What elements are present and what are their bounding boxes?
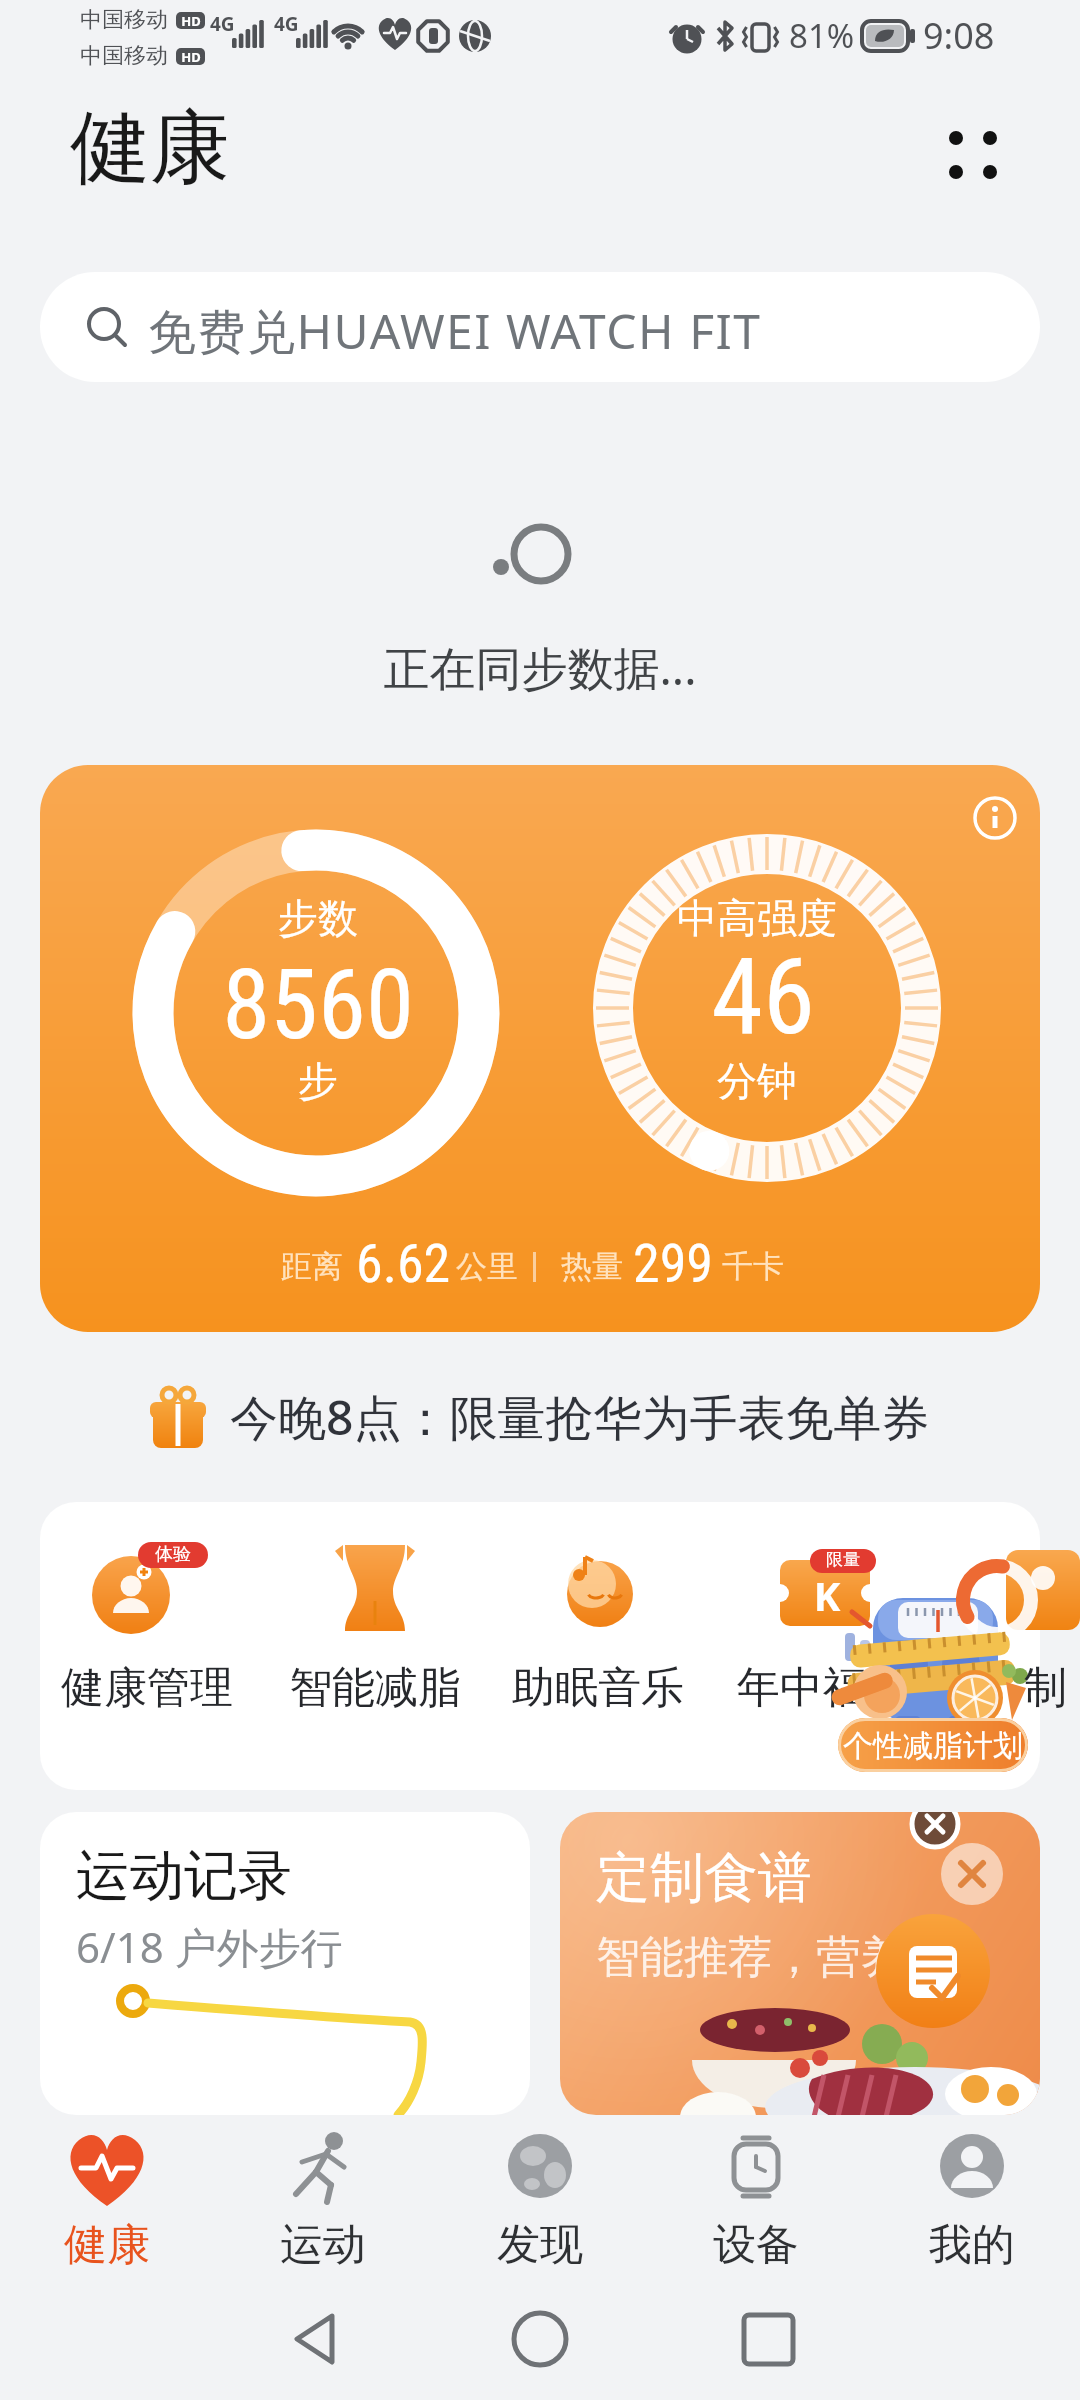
- staticText: 个性减脂计划: [838, 1727, 1028, 1765]
- staticText: 81%: [789, 13, 855, 58]
- button[interactable]: [40, 765, 1040, 1332]
- staticText: 中国移动: [80, 6, 168, 34]
- staticText: 中国移动: [80, 42, 168, 70]
- staticText: 46: [613, 936, 913, 1059]
- button[interactable]: [676, 2124, 836, 2284]
- staticText: 299: [633, 1232, 713, 1295]
- button[interactable]: [130, 1376, 960, 1456]
- staticText: 6.62: [356, 1232, 451, 1295]
- staticText: 设备: [676, 2218, 836, 2272]
- staticText: 4G: [274, 11, 299, 37]
- staticText: 4G: [210, 11, 235, 37]
- button[interactable]: [243, 2124, 403, 2284]
- button[interactable]: [892, 2124, 1052, 2284]
- staticText: 运动记录: [76, 1842, 292, 1910]
- staticText: 制: [1024, 1661, 1067, 1715]
- button[interactable]: [460, 2124, 620, 2284]
- staticText: 智能推荐，营养均: [596, 1930, 948, 1985]
- button[interactable]: [275, 1520, 475, 1750]
- staticText: 热量: [561, 1247, 623, 1286]
- staticText: 步数: [218, 893, 418, 943]
- button[interactable]: 定制食谱: [560, 1812, 1040, 2115]
- staticText: 健康: [27, 2218, 187, 2272]
- staticText: 限量: [810, 1549, 876, 1570]
- staticText: 健康: [70, 98, 230, 199]
- staticText: K: [802, 1568, 852, 1622]
- staticText: 发现: [460, 2218, 620, 2272]
- button[interactable]: [498, 1520, 698, 1750]
- button[interactable]: 个性减脂计划: [838, 1718, 1028, 1772]
- staticText: 分钟: [607, 1056, 907, 1106]
- button[interactable]: [27, 2124, 187, 2284]
- staticText: 健康管理: [37, 1661, 257, 1715]
- staticText: 年中福利: [713, 1661, 933, 1715]
- staticText: 中高强度: [607, 893, 907, 943]
- button[interactable]: 免费兑HUAWEI WATCH FIT: [40, 272, 1040, 382]
- staticText: 智能减脂: [265, 1661, 485, 1715]
- staticText: 距离: [281, 1247, 343, 1286]
- staticText: 8560: [168, 948, 468, 1062]
- staticText: 6/18 户外步行: [76, 1918, 343, 1975]
- button[interactable]: 运动记录: [40, 1812, 530, 2115]
- staticText: 定制食谱: [596, 1844, 812, 1912]
- staticText: 正在同步数据...: [0, 636, 1080, 699]
- staticText: 9:08: [923, 11, 995, 60]
- staticText: 公里: [456, 1247, 518, 1286]
- staticText: 我的: [892, 2218, 1052, 2272]
- button[interactable]: [47, 1520, 247, 1750]
- staticText: 千卡: [722, 1247, 784, 1286]
- staticText: 体验: [138, 1543, 208, 1566]
- staticText: 步: [218, 1056, 418, 1106]
- staticText: 今晚8点：限量抢华为手表免单券: [230, 1384, 930, 1450]
- staticText: HD: [178, 48, 204, 66]
- button[interactable]: [723, 1520, 923, 1750]
- staticText: HD: [178, 12, 204, 30]
- staticText: 助眠音乐: [488, 1661, 708, 1715]
- staticText: 运动: [243, 2218, 403, 2272]
- staticText: 免费兑HUAWEI WATCH FIT: [148, 298, 762, 364]
